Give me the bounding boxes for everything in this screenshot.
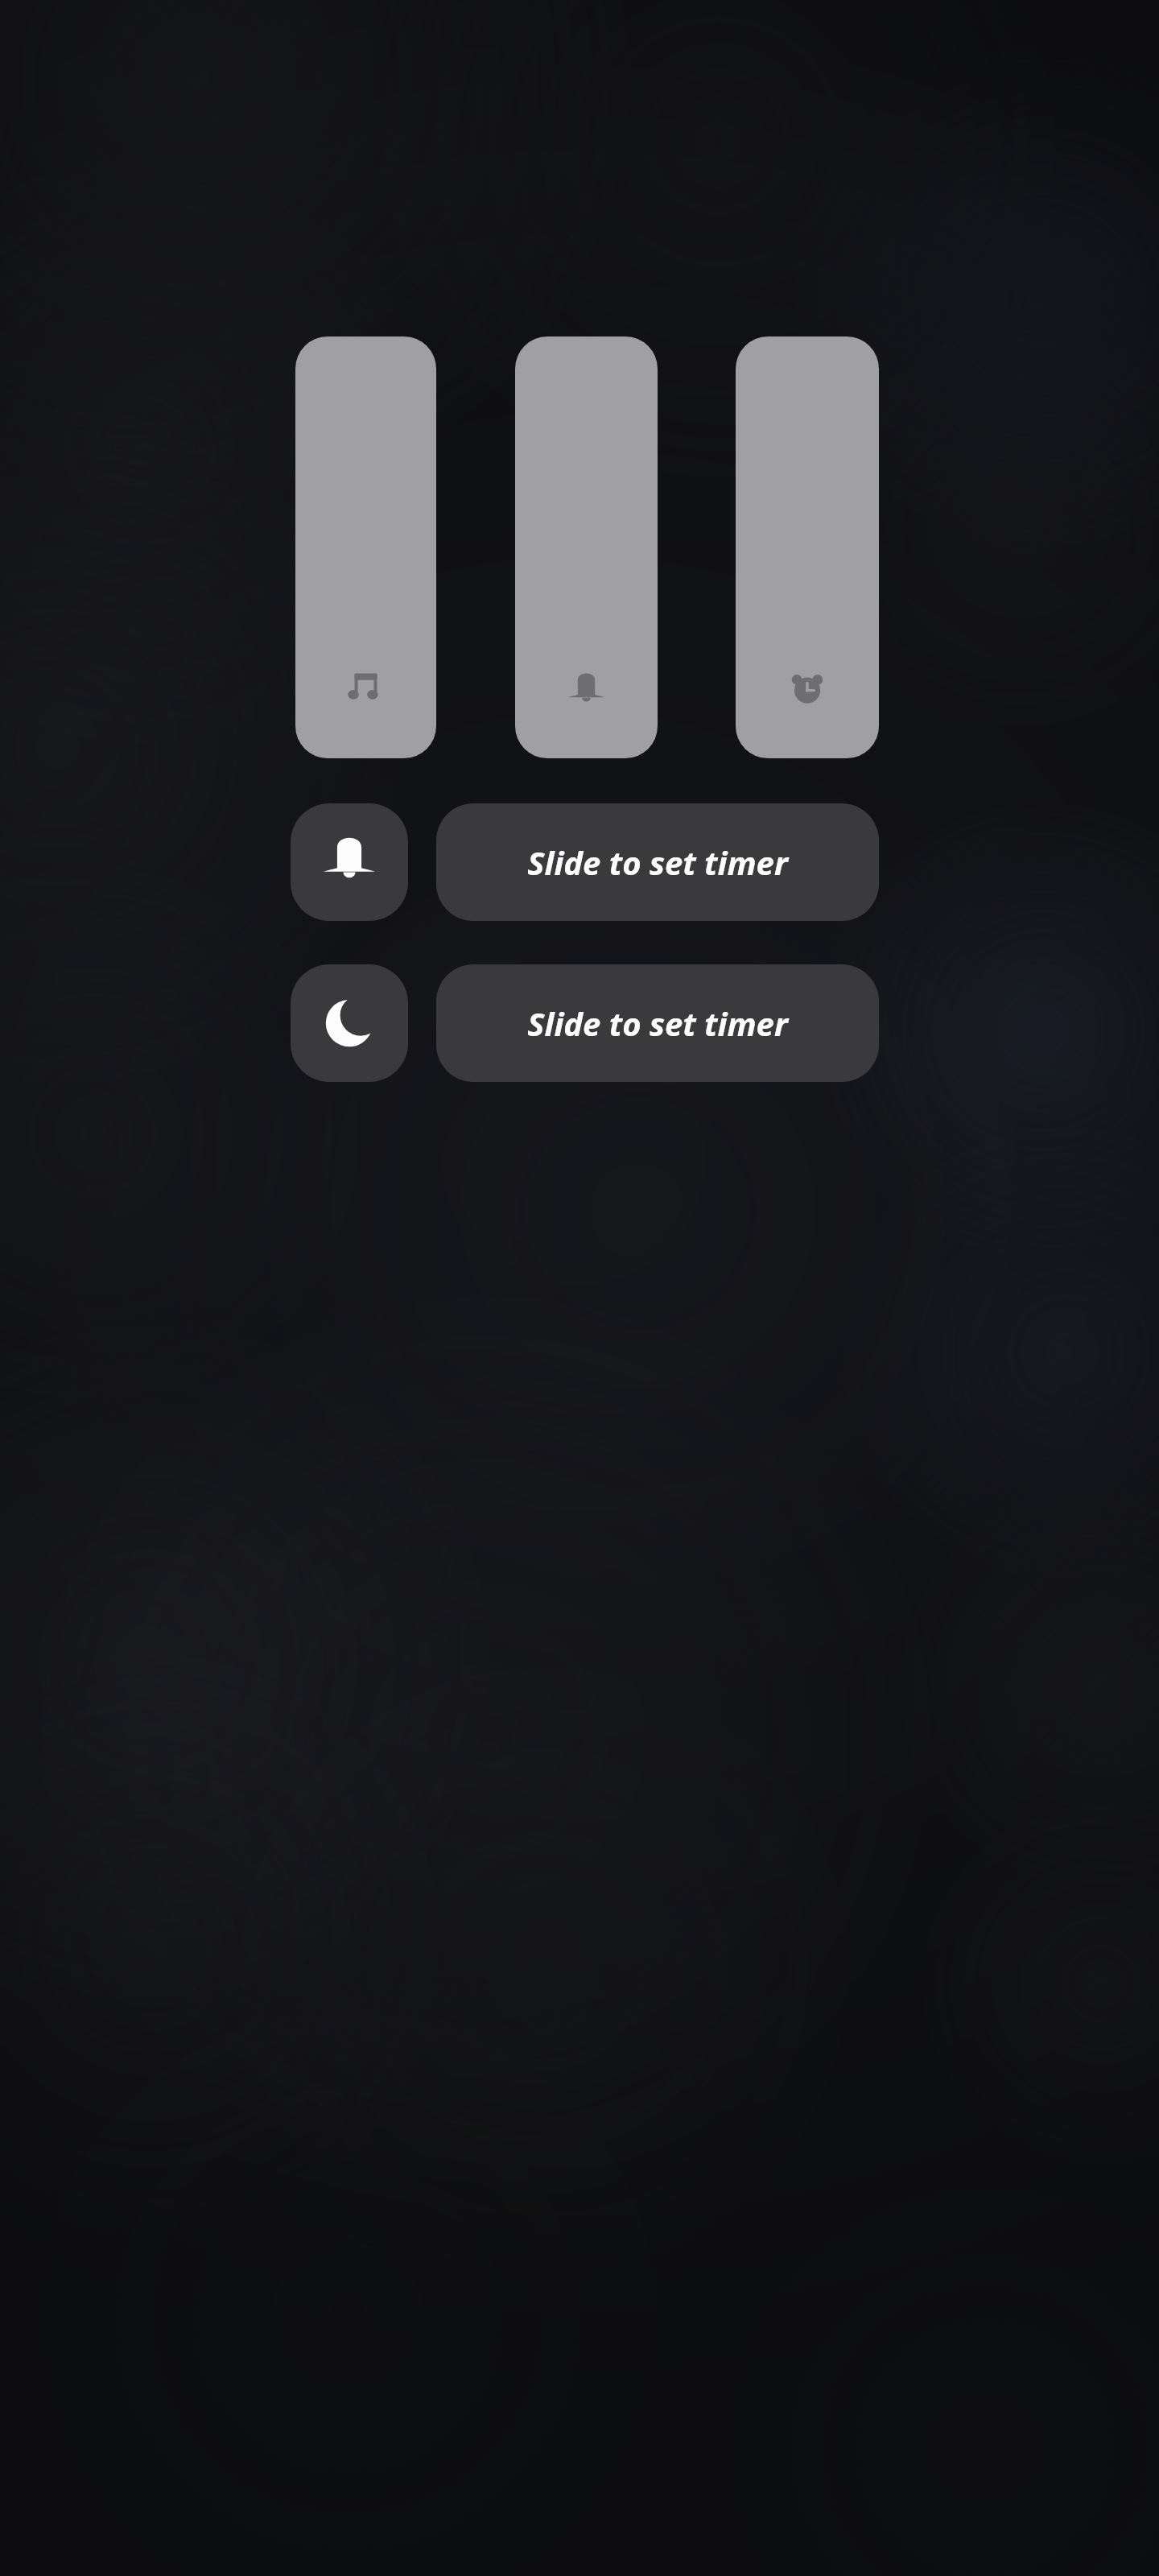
button[interactable]: Ring volume — [515, 336, 658, 758]
button[interactable]: Alarm volume — [736, 336, 879, 758]
staticText: Slide to set timer — [527, 1001, 788, 1045]
staticText: Slide to set timer — [527, 840, 788, 884]
button[interactable]: Slide to set timer — [436, 964, 879, 1082]
button[interactable]: Ringer timer — [291, 803, 408, 921]
button[interactable]: Slide to set timer — [436, 803, 879, 921]
button[interactable]: Music volume — [295, 336, 436, 758]
button[interactable]: Do not disturb timer — [291, 964, 408, 1082]
